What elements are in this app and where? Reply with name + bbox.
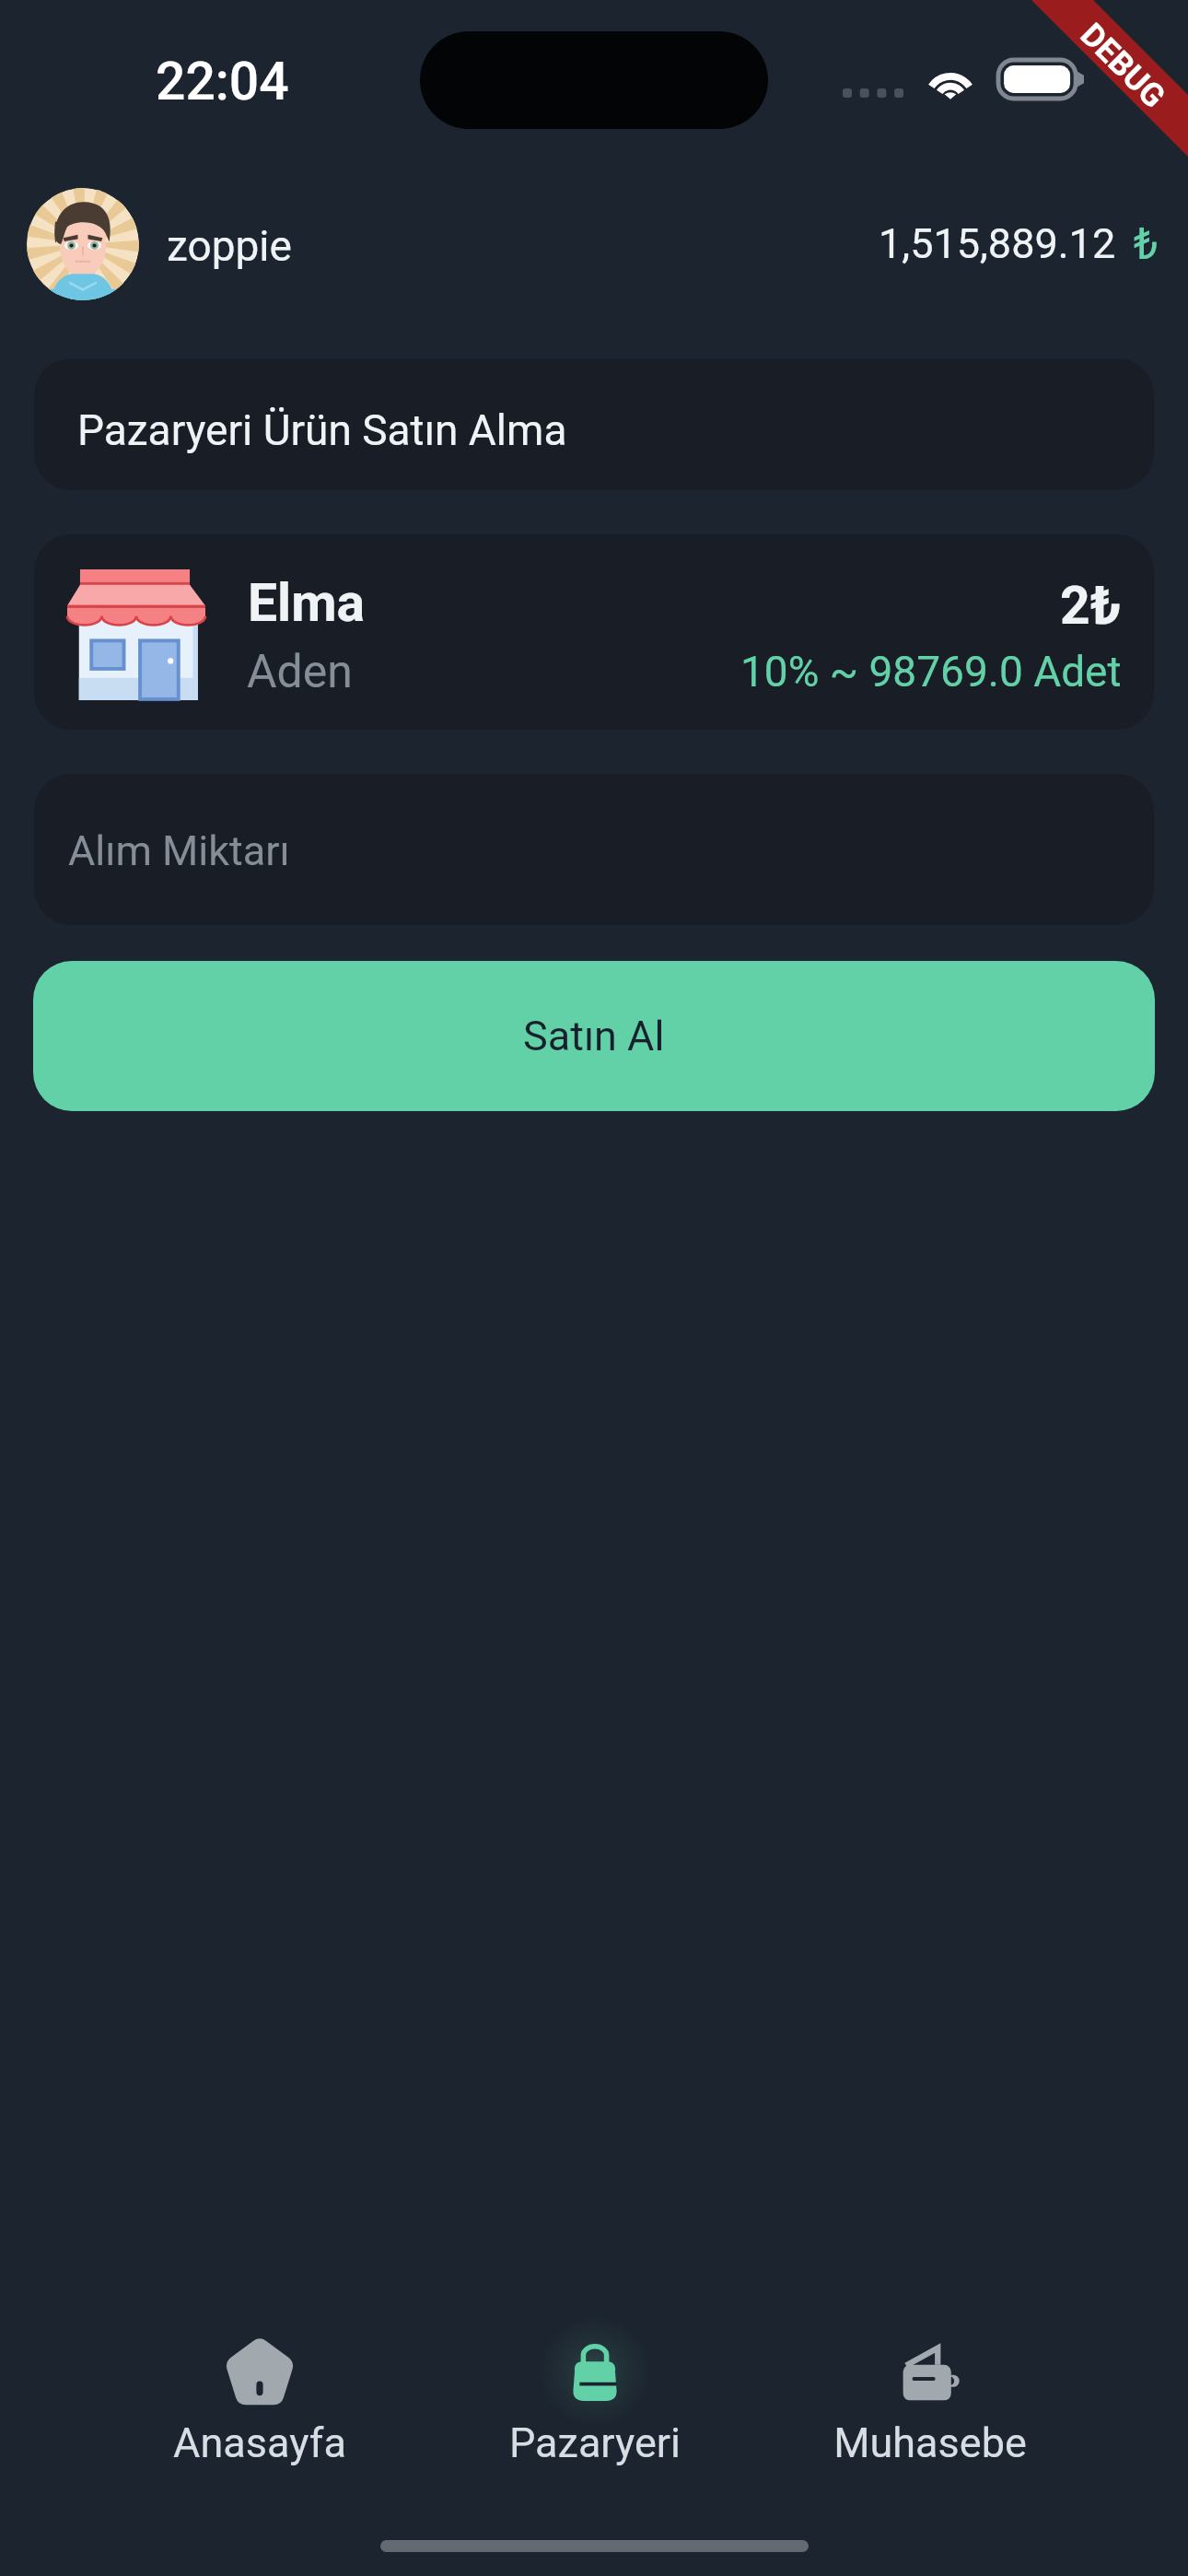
staticText: Satın Al — [523, 1012, 665, 1060]
button[interactable]: Elma — [34, 534, 1154, 730]
button[interactable]: Alım Miktarı — [34, 774, 1154, 925]
button[interactable]: Marketplace — [457, 2308, 733, 2474]
staticText: Aden — [247, 645, 353, 699]
staticText: DEBUG — [1073, 16, 1172, 116]
staticText: Pazaryeri Ürün Satın Alma — [77, 405, 567, 455]
button[interactable]: Satın Al — [33, 961, 1155, 1111]
button[interactable]: Accounting — [792, 2308, 1068, 2474]
staticText: 2₺ — [1060, 575, 1122, 637]
staticText: Pazaryeri — [457, 2418, 733, 2467]
staticText: Muhasebe — [792, 2418, 1068, 2467]
staticText: Anasayfa — [122, 2418, 398, 2467]
staticText: 10% ~ 98769.0 Adet — [740, 647, 1122, 697]
staticText: Elma — [248, 572, 366, 634]
button[interactable]: Profile — [27, 188, 139, 300]
staticText: ₺ — [1134, 217, 1159, 269]
staticText: Alım Miktarı — [68, 826, 290, 875]
staticText: zoppie — [167, 221, 292, 271]
staticText: 1,515,889.12 — [879, 219, 1116, 268]
button[interactable]: Home — [122, 2308, 398, 2474]
staticText: 22:04 — [156, 51, 289, 112]
button[interactable]: Pazaryeri Ürün Satın Alma — [34, 358, 1154, 490]
